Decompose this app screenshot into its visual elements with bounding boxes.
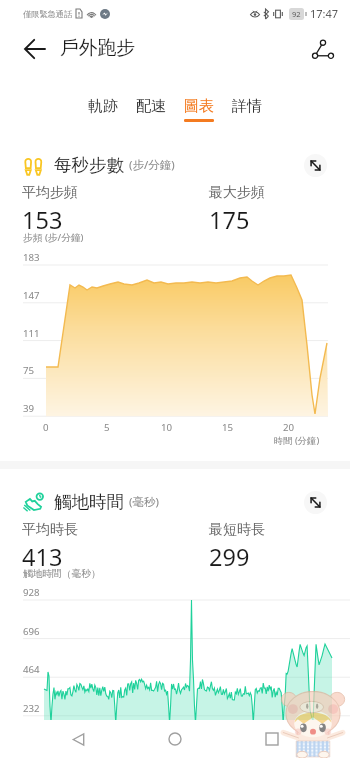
staticText: 觸地時間 (54, 491, 124, 513)
staticText: 928 (23, 586, 40, 599)
staticText: 最短時長 (209, 521, 265, 539)
staticText: 步頻 (步/分鐘) (23, 231, 84, 244)
button[interactable]: Back (17, 31, 53, 67)
staticText: 觸地時間（毫秒） (23, 568, 101, 580)
staticText: 10 (161, 421, 173, 434)
staticText: 軌跡 (88, 97, 118, 116)
staticText: 僅限緊急通話 (23, 9, 73, 19)
staticText: 每秒步數 (54, 154, 124, 176)
staticText: 0 (43, 421, 49, 434)
staticText: 詳情 (232, 97, 262, 116)
button[interactable]: 軌跡 (79, 97, 127, 122)
staticText: 5 (104, 421, 110, 434)
staticText: (步/分鐘) (129, 157, 175, 173)
staticText: 175 (209, 204, 250, 236)
staticText: 696 (23, 625, 40, 638)
button[interactable]: Expand chart (304, 491, 327, 514)
button[interactable]: Expand chart (304, 154, 327, 177)
staticText: 平均時長 (22, 521, 78, 539)
staticText: 配速 (136, 97, 166, 116)
button[interactable]: Share (307, 33, 339, 65)
staticText: 39 (23, 402, 35, 415)
staticText: 111 (23, 327, 40, 340)
staticText: 戶外跑步 (60, 36, 135, 60)
staticText: 464 (23, 663, 40, 676)
staticText: 平均步頻 (22, 184, 78, 202)
staticText: 15 (222, 421, 234, 434)
staticText: 183 (23, 251, 40, 264)
staticText: 75 (23, 364, 35, 377)
button[interactable]: 詳情 (223, 97, 271, 122)
button[interactable]: Back (59, 720, 97, 758)
staticText: 232 (23, 702, 40, 715)
button[interactable]: Home (156, 720, 194, 758)
staticText: 圖表 (184, 97, 214, 116)
staticText: 147 (23, 289, 40, 302)
staticText: 92 (292, 9, 301, 19)
staticText: 最大步頻 (209, 184, 265, 202)
staticText: 299 (209, 541, 250, 573)
staticText: 17:47 (310, 6, 339, 21)
staticText: 時間 (分鐘) (274, 434, 320, 447)
staticText: 153 (22, 204, 63, 236)
button[interactable]: Recents (253, 720, 291, 758)
staticText: 413 (22, 541, 63, 573)
button[interactable]: 配速 (127, 97, 175, 122)
button[interactable]: 圖表 (175, 97, 223, 122)
staticText: (毫秒) (129, 494, 159, 510)
staticText: 20 (283, 421, 295, 434)
